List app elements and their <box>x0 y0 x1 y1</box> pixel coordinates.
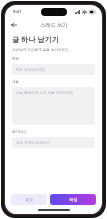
staticText: 스레드 쓰기 <box>40 21 68 28</box>
button[interactable]: 입력 키워드 입력하기 <box>12 137 95 148</box>
button[interactable]: 작성 <box>50 194 96 205</box>
button[interactable]: 취소 <box>11 194 47 205</box>
staticText: 오늘 활동하며 느낀 점을 적어주세요 <box>16 90 74 95</box>
staticText: 내용 <box>12 80 20 85</box>
staticText: 제목 입력해주세요 <box>16 67 46 72</box>
button[interactable]: 오늘 활동하며 느낀 점을 적어주세요 <box>12 87 95 125</box>
staticText: 취소 <box>25 197 34 202</box>
staticText: 간단남게 자유롭게 글을 남겨주세요. <box>12 47 70 52</box>
button[interactable]: Back <box>9 20 19 30</box>
button[interactable]: 제목 입력해주세요 <box>12 64 95 75</box>
staticText: 해시태그 <box>12 130 27 135</box>
staticText: 입력 키워드 입력하기 <box>16 140 51 145</box>
staticText: 글 하나 남기기 <box>12 34 59 44</box>
staticText: 작성 <box>69 197 78 202</box>
staticText: 9:41 <box>13 9 22 15</box>
staticText: 제목 <box>12 57 20 62</box>
